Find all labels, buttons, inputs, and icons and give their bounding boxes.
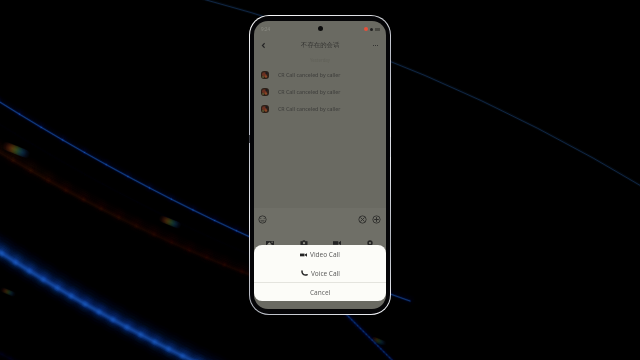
button[interactable]: Voice Call bbox=[254, 264, 386, 282]
staticText: Cancel bbox=[310, 288, 331, 297]
staticText: CR Call canceled by caller bbox=[278, 105, 341, 112]
staticText: Video Call bbox=[310, 250, 340, 259]
button[interactable]: Video bbox=[332, 238, 342, 247]
button[interactable]: Voice message bbox=[358, 215, 367, 224]
button[interactable]: CR Call canceled by caller bbox=[254, 66, 386, 83]
button[interactable]: Cancel bbox=[254, 283, 386, 301]
button[interactable]: CR Call canceled by caller bbox=[254, 100, 386, 117]
button[interactable]: Add bbox=[372, 215, 381, 224]
button[interactable]: Emoji bbox=[258, 215, 267, 224]
staticText: Voice Call bbox=[311, 269, 340, 278]
button[interactable]: Video Call bbox=[254, 245, 386, 264]
button[interactable]: Camera bbox=[299, 238, 309, 247]
staticText: 不存在的会话 bbox=[301, 41, 340, 49]
staticText: 9:24 bbox=[261, 26, 271, 32]
button[interactable]: Record bbox=[365, 238, 375, 247]
button[interactable]: More options bbox=[369, 39, 381, 51]
button[interactable]: Back bbox=[257, 39, 269, 51]
staticText: CR Call canceled by caller bbox=[278, 71, 341, 78]
staticText: CR Call canceled by caller bbox=[278, 88, 341, 95]
button[interactable]: Gallery bbox=[265, 238, 275, 247]
button[interactable]: CR Call canceled by caller bbox=[254, 83, 386, 100]
